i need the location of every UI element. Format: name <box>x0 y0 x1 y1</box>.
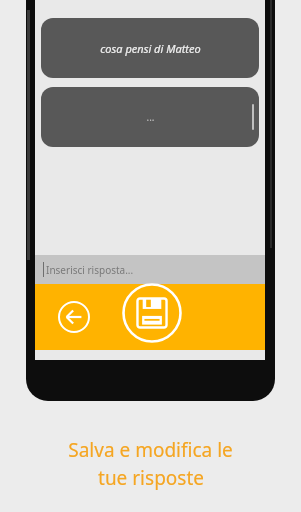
button[interactable]: cosa pensi di Matteo <box>41 18 259 78</box>
button[interactable]: Inserisci risposta... <box>35 255 265 284</box>
button[interactable]: ... <box>41 87 259 147</box>
staticText: tue risposte <box>98 465 204 491</box>
button[interactable]: Back <box>57 300 91 334</box>
staticText: cosa pensi di Matteo <box>100 41 201 56</box>
button[interactable]: Save <box>121 282 183 344</box>
staticText: Salva e modifica le <box>68 437 233 463</box>
staticText: Inserisci risposta... <box>46 263 134 277</box>
staticText: ... <box>146 110 155 124</box>
